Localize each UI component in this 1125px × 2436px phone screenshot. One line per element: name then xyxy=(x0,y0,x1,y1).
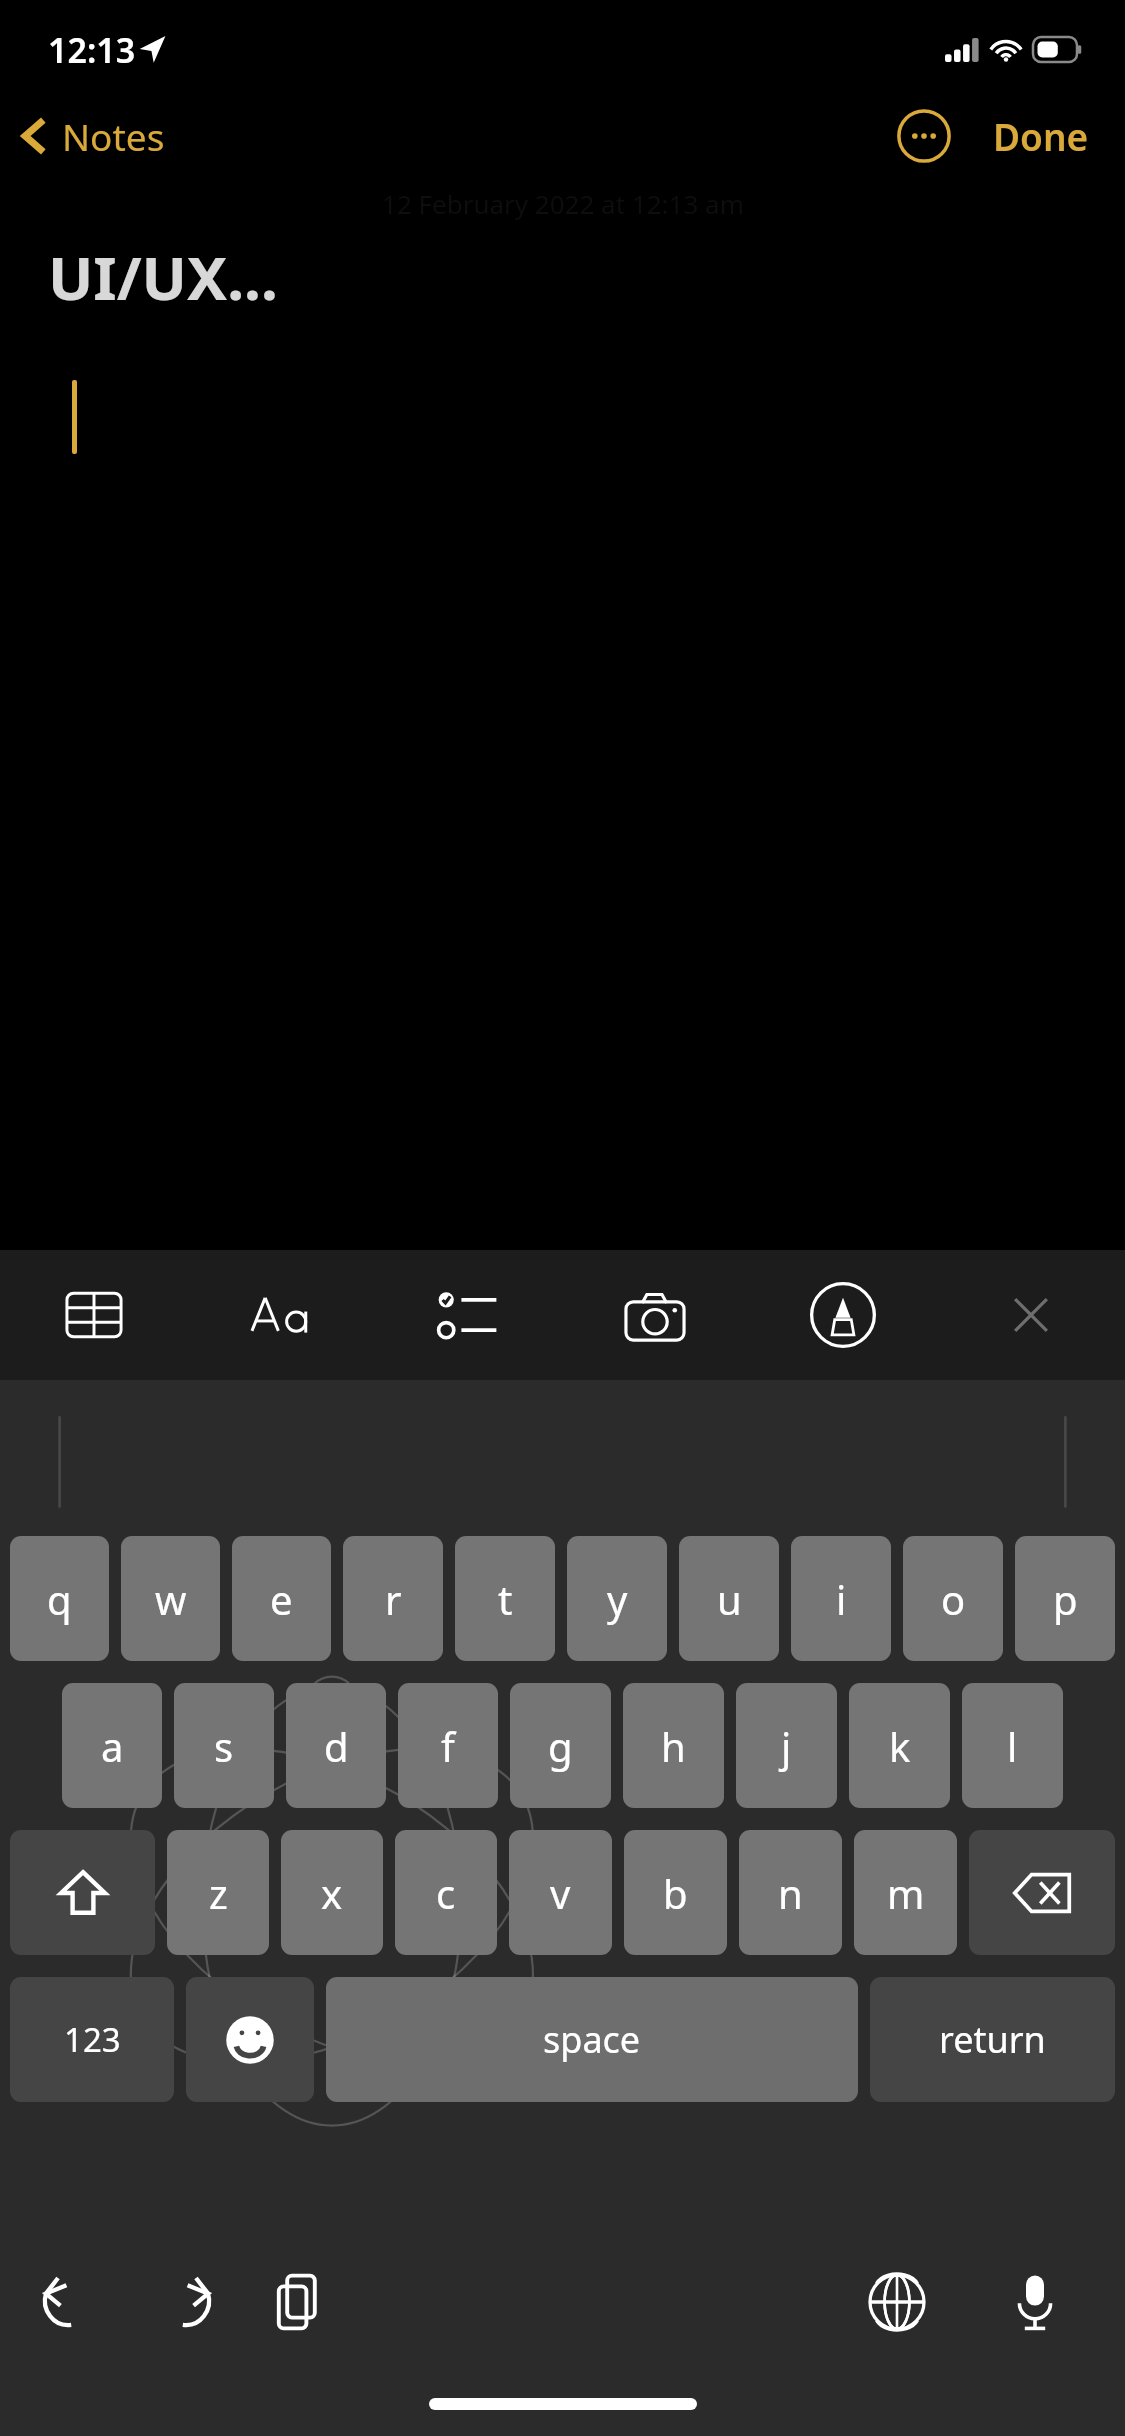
staticText: n xyxy=(778,1866,803,1920)
staticText: h xyxy=(661,1719,686,1773)
button[interactable]: g xyxy=(510,1683,611,1808)
staticText: i xyxy=(836,1572,847,1626)
button[interactable]: v xyxy=(509,1830,612,1955)
staticText: space xyxy=(543,2015,641,2064)
staticText: t xyxy=(498,1572,513,1626)
button[interactable]: Backspace xyxy=(969,1830,1115,1955)
button[interactable]: s xyxy=(174,1683,274,1808)
staticText: p xyxy=(1053,1572,1078,1626)
button[interactable]: Markup xyxy=(749,1250,937,1380)
button[interactable]: a xyxy=(62,1683,162,1808)
staticText: s xyxy=(214,1719,234,1773)
staticText: 12 February 2022 at 12:13 am xyxy=(382,186,744,221)
button[interactable]: b xyxy=(624,1830,727,1955)
button[interactable]: j xyxy=(736,1683,837,1808)
button[interactable]: t xyxy=(455,1536,555,1661)
button[interactable]: h xyxy=(623,1683,724,1808)
staticText: e xyxy=(270,1572,293,1626)
staticText: o xyxy=(941,1572,966,1626)
staticText: r xyxy=(385,1572,402,1626)
staticText: j xyxy=(781,1719,792,1773)
button[interactable]: l xyxy=(962,1683,1063,1808)
button[interactable]: n xyxy=(739,1830,842,1955)
button[interactable]: 12 February 2022 at 12:13 am xyxy=(0,180,1125,1250)
button[interactable]: d xyxy=(286,1683,386,1808)
button[interactable]: space xyxy=(326,1977,858,2102)
button[interactable]: return xyxy=(870,1977,1115,2102)
staticText: return xyxy=(939,2015,1046,2064)
staticText: z xyxy=(209,1866,228,1920)
staticText: 123 xyxy=(64,2017,121,2062)
button[interactable]: Dictation xyxy=(987,2254,1083,2350)
button[interactable]: Redo xyxy=(136,2254,232,2350)
staticText: f xyxy=(441,1719,455,1773)
button[interactable]: Undo xyxy=(22,2254,118,2350)
staticText: b xyxy=(663,1866,688,1920)
staticText: Done xyxy=(993,111,1089,161)
button[interactable]: Text format xyxy=(187,1250,374,1380)
button[interactable]: e xyxy=(232,1536,331,1661)
button[interactable]: Paste xyxy=(250,2254,346,2350)
button[interactable]: c xyxy=(395,1830,497,1955)
staticText: a xyxy=(101,1719,124,1773)
button[interactable]: More options xyxy=(893,105,955,167)
button[interactable]: u xyxy=(679,1536,779,1661)
button[interactable]: q xyxy=(10,1536,109,1661)
button[interactable]: x xyxy=(281,1830,383,1955)
button[interactable]: Table xyxy=(0,1250,187,1380)
button[interactable]: o xyxy=(903,1536,1003,1661)
staticText: y xyxy=(607,1572,628,1626)
staticText: u xyxy=(717,1572,742,1626)
staticText: UI/UX... xyxy=(48,236,278,318)
button[interactable]: Camera xyxy=(561,1250,749,1380)
button[interactable]: y xyxy=(567,1536,667,1661)
staticText: m xyxy=(887,1866,925,1920)
button[interactable]: p xyxy=(1015,1536,1115,1661)
button[interactable]: Done xyxy=(987,103,1095,169)
staticText: l xyxy=(1007,1719,1018,1773)
button[interactable]: m xyxy=(854,1830,957,1955)
staticText: v xyxy=(550,1866,571,1920)
staticText: q xyxy=(47,1572,72,1626)
button[interactable]: f xyxy=(398,1683,498,1808)
button[interactable]: w xyxy=(121,1536,220,1661)
staticText: 12:13 xyxy=(48,27,136,73)
button[interactable]: Change keyboard xyxy=(849,2254,945,2350)
button[interactable]: r xyxy=(343,1536,443,1661)
staticText: Notes xyxy=(62,111,165,161)
staticText: c xyxy=(436,1866,456,1920)
button[interactable]: Close xyxy=(937,1250,1125,1380)
staticText: k xyxy=(889,1719,911,1773)
button[interactable]: 123 xyxy=(10,1977,174,2102)
staticText: w xyxy=(155,1572,187,1626)
button[interactable]: Shift xyxy=(10,1830,155,1955)
staticText: d xyxy=(324,1719,349,1773)
button[interactable]: Checklist xyxy=(374,1250,561,1380)
button[interactable]: z xyxy=(167,1830,269,1955)
button[interactable]: Notes xyxy=(0,103,181,169)
button[interactable]: Emoji xyxy=(186,1977,314,2102)
staticText: x xyxy=(321,1866,343,1920)
staticText: g xyxy=(548,1719,573,1773)
button[interactable]: i xyxy=(791,1536,891,1661)
button[interactable]: k xyxy=(849,1683,950,1808)
